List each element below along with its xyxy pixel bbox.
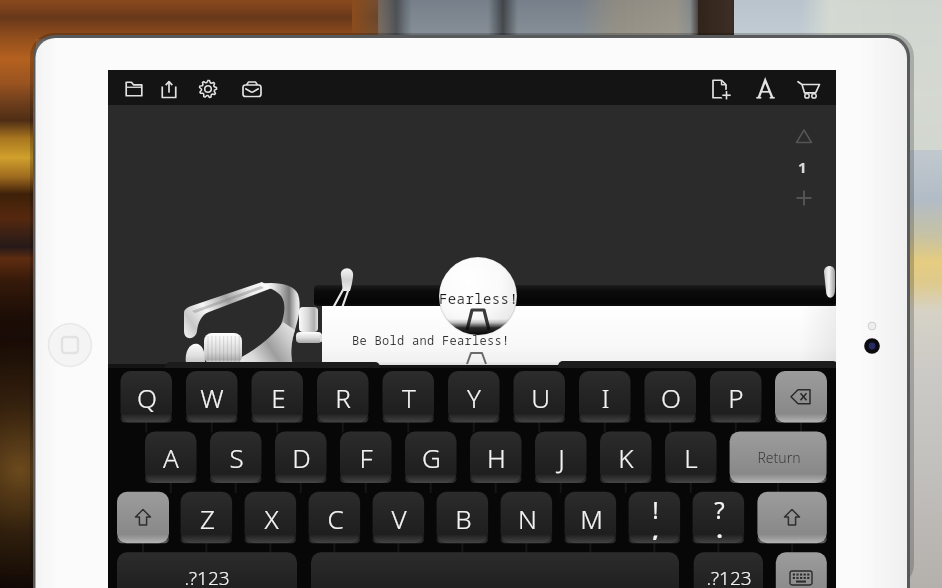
button[interactable]: M xyxy=(565,492,617,544)
staticText: L xyxy=(684,440,698,475)
staticText: O xyxy=(661,380,681,415)
button[interactable]: E xyxy=(252,371,304,423)
button[interactable]: S xyxy=(210,431,262,483)
button[interactable]: V xyxy=(373,492,425,544)
button[interactable]: Q xyxy=(121,371,173,423)
button[interactable]: Add page xyxy=(788,188,820,210)
staticText: P xyxy=(728,380,744,415)
button[interactable]: ! xyxy=(629,492,681,544)
staticText: E xyxy=(271,380,286,415)
staticText: V xyxy=(391,501,407,536)
button[interactable]: Z xyxy=(181,492,233,544)
button[interactable]: Shift xyxy=(757,492,826,544)
staticText: M xyxy=(580,501,603,536)
staticText: K xyxy=(618,440,634,475)
staticText: .?123 xyxy=(706,565,752,588)
button[interactable]: R xyxy=(317,371,369,423)
button[interactable]: D xyxy=(275,431,327,483)
button[interactable]: Backspace xyxy=(775,371,827,423)
staticText: N xyxy=(518,501,537,536)
button[interactable]: G xyxy=(405,431,457,483)
button[interactable]: J xyxy=(535,431,587,483)
staticText: . xyxy=(716,514,723,540)
button[interactable]: H xyxy=(470,431,522,483)
staticText: .?123 xyxy=(184,565,230,588)
button[interactable]: Y xyxy=(448,371,500,423)
staticText: W xyxy=(200,380,224,415)
button[interactable]: C xyxy=(309,492,361,544)
staticText: 1 xyxy=(798,157,807,177)
button[interactable]: W xyxy=(186,371,238,423)
button[interactable]: A xyxy=(145,431,197,483)
staticText: F xyxy=(359,440,373,475)
button[interactable]: X xyxy=(245,492,297,544)
button[interactable]: Share xyxy=(153,72,185,104)
button[interactable]: .?123 xyxy=(694,552,763,588)
staticText: C xyxy=(327,501,344,536)
button[interactable]: Shift xyxy=(117,492,169,544)
button[interactable]: O xyxy=(645,371,697,423)
staticText: Z xyxy=(200,501,215,536)
button[interactable]: I xyxy=(579,371,631,423)
button[interactable]: Print xyxy=(236,72,268,104)
staticText: Return xyxy=(757,448,801,467)
button[interactable]: New document xyxy=(705,72,737,104)
button[interactable]: N xyxy=(501,492,553,544)
button[interactable]: P xyxy=(710,371,762,423)
button[interactable]: F xyxy=(340,431,392,483)
button[interactable]: Return xyxy=(730,431,827,483)
button[interactable]: Store xyxy=(793,72,825,104)
staticText: A xyxy=(163,440,179,475)
staticText: ! xyxy=(652,493,659,519)
staticText: I xyxy=(601,380,610,415)
button[interactable] xyxy=(311,552,679,588)
staticText: D xyxy=(292,440,311,475)
staticText: J xyxy=(558,440,565,475)
button[interactable]: T xyxy=(383,371,435,423)
button[interactable]: Fonts xyxy=(749,72,781,104)
button[interactable]: Previous page xyxy=(788,126,820,148)
button[interactable]: U xyxy=(514,371,566,423)
button[interactable]: B xyxy=(437,492,489,544)
staticText: , xyxy=(652,514,659,540)
staticText: B xyxy=(455,501,472,536)
staticText: X xyxy=(264,501,279,536)
staticText: Be Bold and Fearless! xyxy=(352,332,510,348)
staticText: H xyxy=(487,440,506,475)
staticText: Fearless! xyxy=(439,289,519,308)
staticText: U xyxy=(531,380,550,415)
staticText: Q xyxy=(137,380,157,415)
button[interactable]: Documents xyxy=(118,72,150,104)
button[interactable]: ? xyxy=(693,492,745,544)
staticText: R xyxy=(335,380,351,415)
button[interactable]: L xyxy=(665,431,717,483)
button[interactable]: Hide keyboard xyxy=(776,552,827,588)
staticText: Y xyxy=(467,380,481,415)
button[interactable]: K xyxy=(600,431,652,483)
staticText: T xyxy=(402,380,416,415)
staticText: S xyxy=(229,440,244,475)
button[interactable]: Settings xyxy=(192,72,224,104)
button[interactable]: .?123 xyxy=(117,552,297,588)
staticText: ? xyxy=(714,493,725,519)
staticText: G xyxy=(422,440,441,475)
